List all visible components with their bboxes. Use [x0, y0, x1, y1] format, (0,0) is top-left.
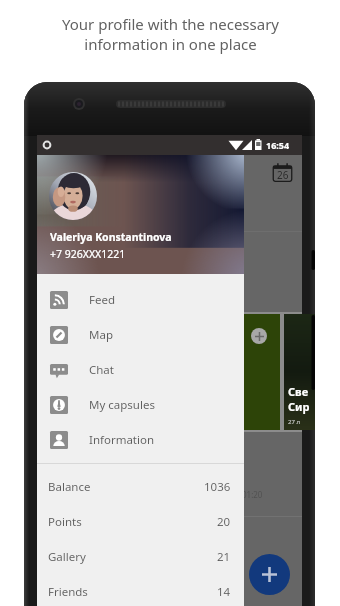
staticText: Your profile with the necessary [62, 14, 279, 34]
staticText: Сир [288, 399, 310, 414]
staticText: +7 926XXX1221 [50, 247, 126, 261]
staticText: Chat [89, 362, 114, 378]
staticText: 21 [217, 549, 231, 565]
staticText: Friends [48, 584, 88, 600]
button[interactable]: Feed [37, 282, 244, 317]
button[interactable]: Све [284, 314, 315, 430]
button[interactable]: Map [37, 317, 244, 352]
staticText: Map [89, 327, 113, 343]
button[interactable]: Add [249, 554, 290, 595]
button[interactable]: Balance [37, 469, 244, 504]
button[interactable]: Chat [37, 352, 244, 387]
staticText: 26 [277, 168, 289, 182]
staticText: Gallery [48, 549, 86, 565]
staticText: Све [288, 384, 309, 399]
staticText: 1036 [204, 479, 231, 495]
staticText: 01:20 [242, 489, 263, 500]
staticText: 20 [217, 514, 231, 530]
staticText: Valeriya Konstantinova [50, 230, 172, 244]
staticText: 27 л [288, 418, 300, 426]
button[interactable]: Calendar [272, 162, 293, 183]
staticText: 16:54 [266, 139, 290, 151]
button[interactable]: Gallery [37, 539, 244, 574]
button[interactable] [251, 328, 267, 344]
button[interactable]: Information [37, 422, 244, 457]
button[interactable] [155, 314, 280, 430]
button[interactable]: Points [37, 504, 244, 539]
staticText: Points [48, 514, 82, 530]
staticText: 14 [217, 584, 231, 600]
button[interactable]: My capsules [37, 387, 244, 422]
staticText: information in one place [84, 34, 257, 54]
staticText: Information [89, 432, 155, 448]
staticText: Balance [48, 479, 91, 495]
staticText: Feed [89, 292, 116, 308]
staticText: My capsules [89, 397, 155, 413]
button[interactable]: Friends [37, 574, 244, 606]
